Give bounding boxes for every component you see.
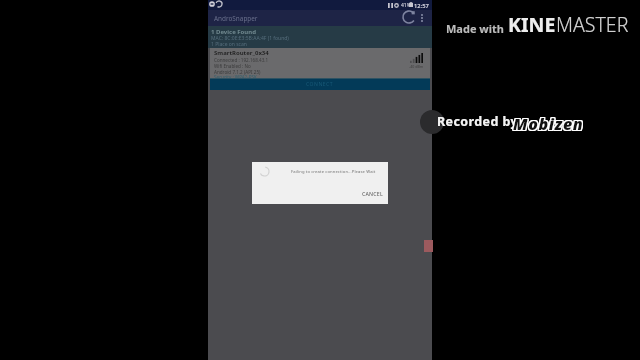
staticText: CONNECT bbox=[306, 81, 334, 88]
staticText: MAC: 8C:0E:E3:5B:AA:4F (1 found) bbox=[211, 35, 289, 42]
staticText: KINE bbox=[508, 11, 556, 38]
staticText: Made with bbox=[446, 21, 504, 36]
staticText: -40 dBm bbox=[409, 64, 424, 69]
staticText: Failing to create connection...Please Wa… bbox=[291, 169, 376, 175]
staticText: MASTER bbox=[556, 11, 629, 38]
staticText: 1 Place on scan bbox=[211, 41, 247, 48]
staticText: Mobizen bbox=[514, 112, 585, 134]
staticText: CANCEL bbox=[362, 190, 383, 197]
staticText: Mobizen bbox=[512, 114, 583, 136]
staticText: Mobizen bbox=[513, 114, 584, 136]
button[interactable]: More options bbox=[416, 12, 428, 24]
staticText: Connected : 192.168.43.1 bbox=[214, 57, 269, 63]
button[interactable]: Refresh bbox=[401, 9, 417, 25]
staticText: 1 Device Found bbox=[211, 28, 256, 36]
staticText: Wifi Enabled : No bbox=[214, 63, 251, 69]
staticText: SmartRouter_0x34 bbox=[214, 49, 269, 57]
staticText: AndroSnapper bbox=[214, 14, 258, 23]
staticText: 12:57 bbox=[414, 2, 429, 10]
staticText: Security : WPA2-PSK bbox=[214, 74, 257, 80]
button[interactable]: CANCEL bbox=[360, 189, 385, 198]
staticText: Mobizen bbox=[513, 113, 584, 135]
staticText: Mobizen bbox=[513, 112, 584, 134]
staticText: 41% bbox=[401, 2, 411, 9]
staticText: Mobizen bbox=[514, 114, 585, 136]
staticText: Recorded by bbox=[437, 113, 518, 130]
staticText: Mobizen bbox=[514, 113, 585, 135]
staticText: Android 7.1.2 (API 25) bbox=[214, 69, 261, 75]
staticText: Mobizen bbox=[512, 112, 583, 134]
button[interactable]: Recorder overlay bbox=[420, 110, 444, 134]
staticText: Mobizen bbox=[512, 113, 583, 135]
